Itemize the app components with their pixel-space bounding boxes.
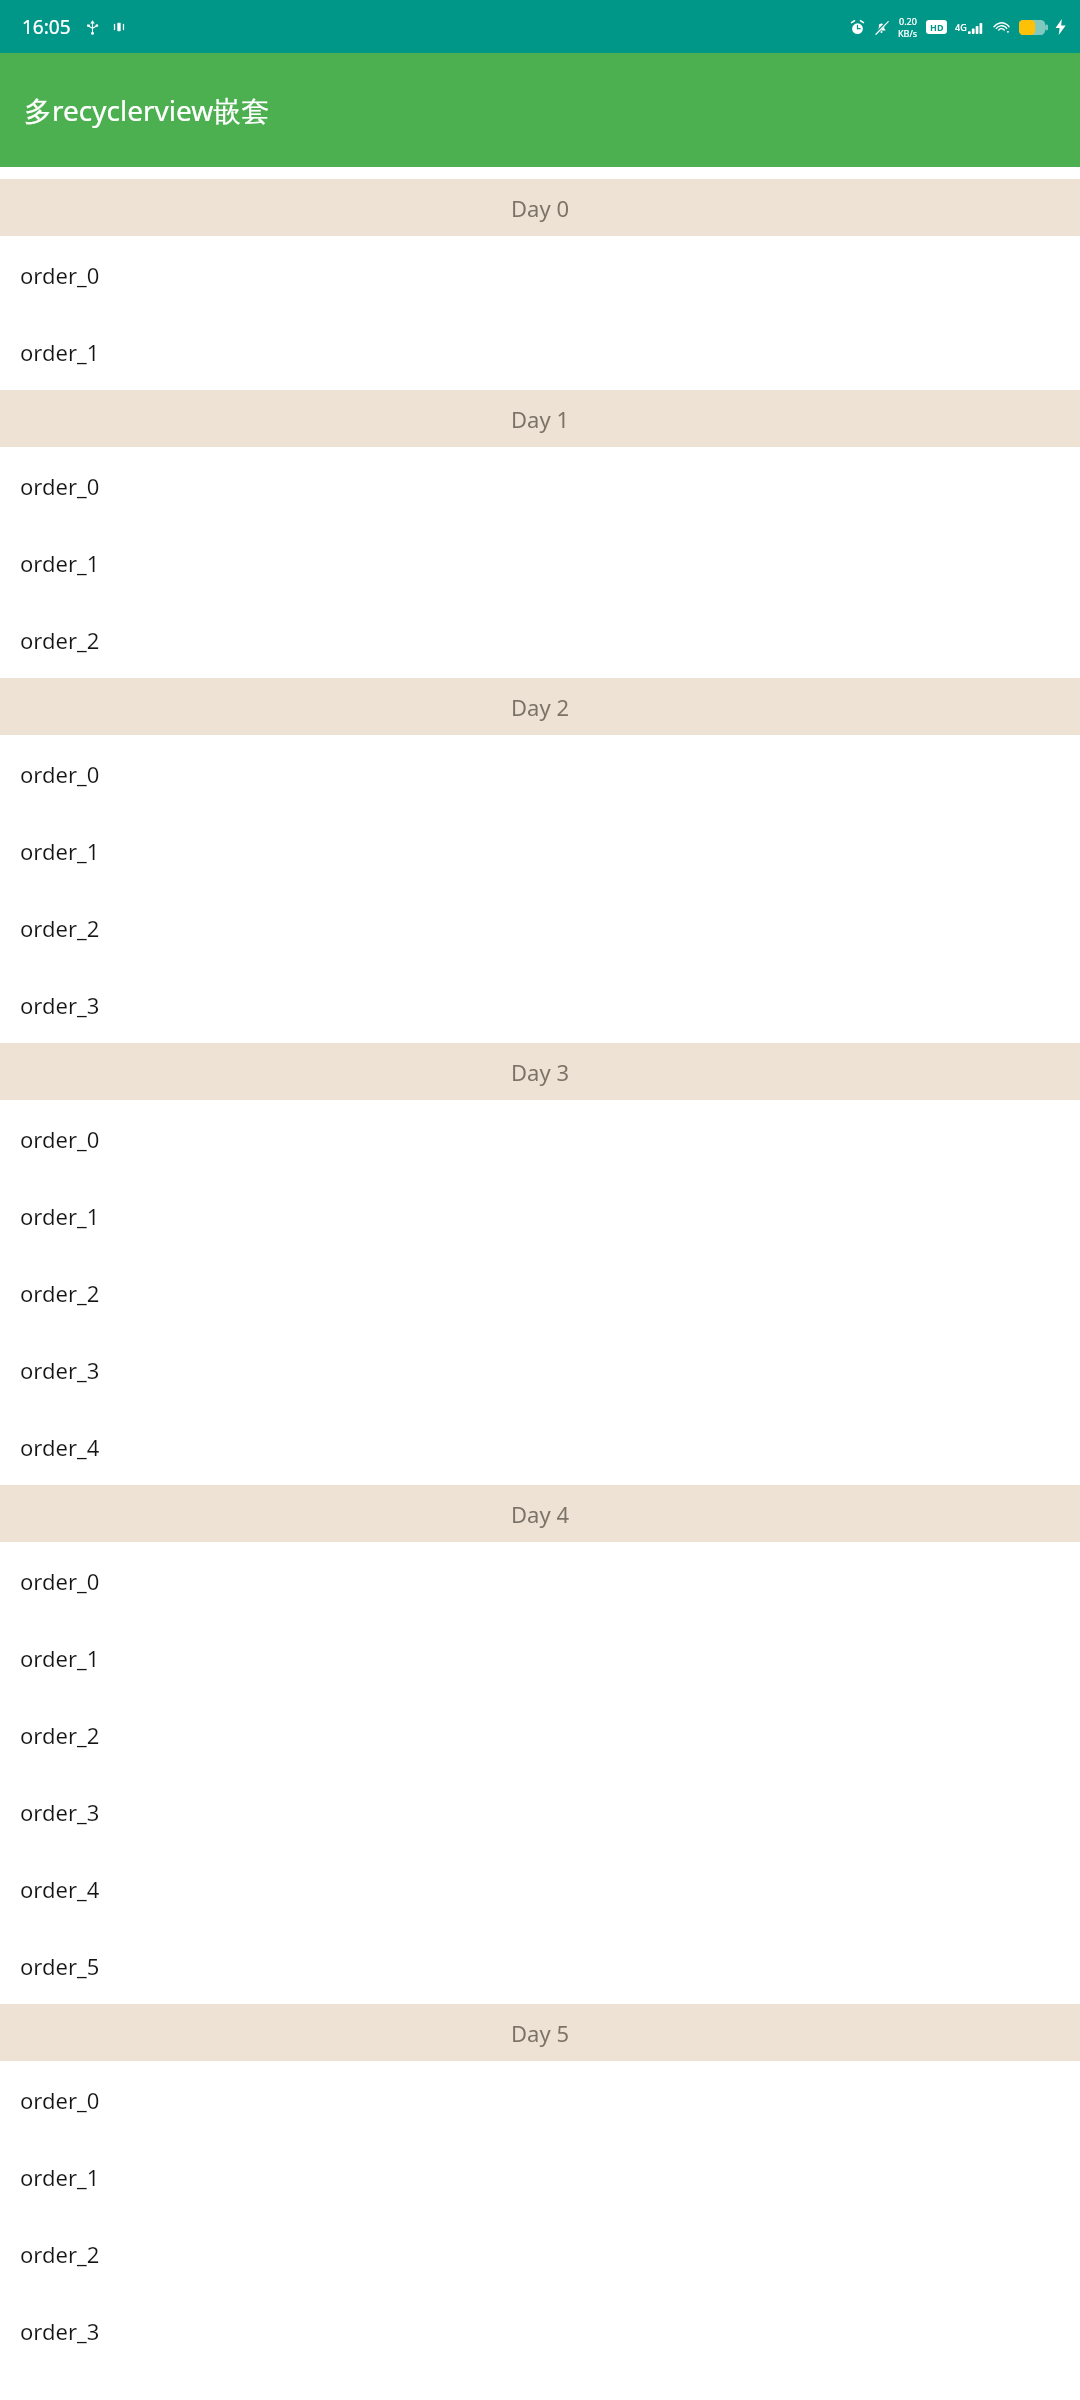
staticText: Day 3 [511,1057,569,1087]
button[interactable]: order_1 [0,313,1080,390]
staticText: order_1 [20,548,100,578]
button[interactable]: order_3 [0,2292,1080,2369]
staticText: order_2 [20,1278,100,1308]
button[interactable]: Day 2 [0,678,1080,735]
staticText: Day 5 [511,2018,569,2048]
button[interactable]: order_1 [0,812,1080,889]
button[interactable]: order_1 [0,2138,1080,2215]
staticText: 4G [955,21,967,33]
button[interactable]: Day 4 [0,1485,1080,1542]
staticText: order_0 [20,759,100,789]
button[interactable]: order_2 [0,601,1080,678]
staticText: order_3 [20,1355,100,1385]
button[interactable]: Day 1 [0,390,1080,447]
staticText: 0.20 [899,15,917,27]
button[interactable]: order_1 [0,524,1080,601]
staticText: order_3 [20,990,100,1020]
button[interactable]: order_4 [0,1408,1080,1485]
staticText: order_0 [20,1566,100,1596]
staticText: order_2 [20,2239,100,2269]
staticText: order_0 [20,260,100,290]
staticText: Day 4 [511,1499,569,1529]
staticText: order_4 [20,1874,100,1904]
button[interactable]: order_0 [0,1100,1080,1177]
button[interactable]: Day 5 [0,2004,1080,2061]
staticText: order_0 [20,1124,100,1154]
button[interactable]: order_2 [0,889,1080,966]
button[interactable]: order_4 [0,1850,1080,1927]
staticText: order_0 [20,471,100,501]
staticText: order_1 [20,337,100,367]
button[interactable]: order_2 [0,1254,1080,1331]
staticText: 多recyclerview嵌套 [24,91,270,129]
button[interactable]: Day 0 [0,179,1080,236]
button[interactable]: order_0 [0,1542,1080,1619]
button[interactable]: order_5 [0,1927,1080,2004]
staticText: 16:05 [22,14,71,40]
button[interactable]: Day 3 [0,1043,1080,1100]
staticText: Day 0 [511,193,569,223]
staticText: order_1 [20,2162,100,2192]
staticText: order_1 [20,836,100,866]
staticText: order_3 [20,2316,100,2346]
staticText: order_2 [20,1720,100,1750]
button[interactable]: order_0 [0,447,1080,524]
staticText: HD [930,21,944,33]
button[interactable]: order_1 [0,1619,1080,1696]
staticText: order_2 [20,625,100,655]
staticText: order_5 [20,1951,100,1981]
staticText: order_0 [20,2085,100,2115]
staticText: order_3 [20,1797,100,1827]
button[interactable]: order_0 [0,735,1080,812]
button[interactable]: order_0 [0,236,1080,313]
staticText: order_2 [20,913,100,943]
staticText: order_4 [20,1432,100,1462]
button[interactable]: order_2 [0,2215,1080,2292]
staticText: KB/s [898,27,918,39]
staticText: Day 2 [511,692,569,722]
button[interactable]: order_0 [0,2061,1080,2138]
staticText: order_1 [20,1201,100,1231]
button[interactable]: order_1 [0,1177,1080,1254]
button[interactable]: order_3 [0,1773,1080,1850]
staticText: order_1 [20,1643,100,1673]
staticText: Day 1 [511,404,569,434]
button[interactable]: order_3 [0,1331,1080,1408]
button[interactable]: order_2 [0,1696,1080,1773]
button[interactable]: order_3 [0,966,1080,1043]
